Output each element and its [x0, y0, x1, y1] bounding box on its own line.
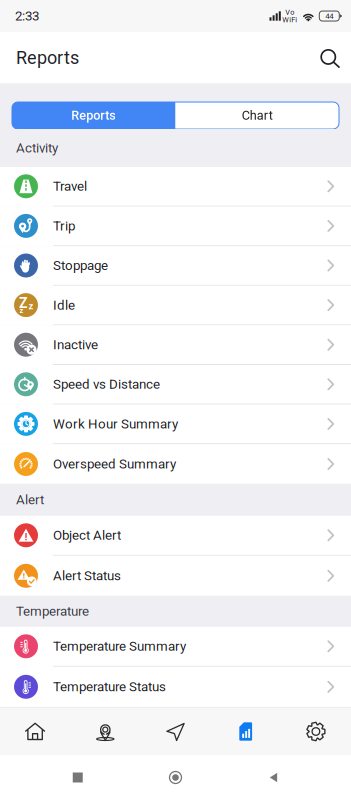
staticText: Trip: [53, 218, 75, 234]
staticText: Vo: [285, 8, 294, 16]
button[interactable]: Recents: [58, 755, 98, 800]
button[interactable]: Stoppage: [0, 246, 351, 286]
button[interactable]: Chart: [175, 102, 339, 129]
button[interactable]: Overspeed Summary: [0, 444, 351, 484]
staticText: Travel: [53, 178, 87, 194]
staticText: Alert Status: [53, 568, 121, 584]
staticText: Object Alert: [53, 527, 121, 543]
button[interactable]: Back: [253, 755, 293, 800]
button[interactable]: Work Hour Summary: [0, 405, 351, 444]
staticText: Alert: [16, 492, 44, 508]
staticText: Reports: [71, 108, 116, 123]
staticText: Z: [19, 295, 27, 311]
button[interactable]: Alert Status: [0, 556, 351, 596]
button[interactable]: Home: [155, 755, 195, 800]
staticText: Work Hour Summary: [53, 416, 178, 432]
button[interactable]: Settings: [281, 708, 351, 755]
staticText: Stoppage: [53, 258, 108, 273]
button[interactable]: Places: [70, 708, 140, 755]
button[interactable]: Z: [0, 286, 351, 325]
staticText: Chart: [242, 108, 273, 123]
staticText: Activity: [16, 140, 58, 156]
button[interactable]: Object Alert: [0, 516, 351, 556]
button[interactable]: Reports: [211, 708, 281, 755]
staticText: z: [19, 306, 23, 315]
staticText: Reports: [16, 47, 79, 68]
button[interactable]: Temperature Status: [0, 667, 351, 707]
staticText: Idle: [53, 297, 75, 313]
button[interactable]: Home: [0, 708, 70, 755]
button[interactable]: Reports: [12, 102, 175, 129]
staticText: Speed vs Distance: [53, 376, 160, 392]
staticText: z: [28, 301, 33, 311]
staticText: Temperature: [16, 603, 89, 619]
button[interactable]: Trip: [0, 207, 351, 246]
staticText: WiFi: [282, 15, 297, 24]
staticText: Temperature Summary: [53, 638, 186, 654]
button[interactable]: Search: [309, 37, 351, 79]
staticText: 44: [325, 11, 333, 21]
staticText: 2:33: [15, 8, 39, 24]
button[interactable]: Live Track: [140, 708, 211, 755]
staticText: Overspeed Summary: [53, 456, 176, 472]
button[interactable]: Inactive: [0, 325, 351, 365]
staticText: Temperature Status: [53, 679, 166, 695]
button[interactable]: Travel: [0, 167, 351, 207]
button[interactable]: Temperature Summary: [0, 627, 351, 667]
button[interactable]: Speed vs Distance: [0, 365, 351, 405]
staticText: Inactive: [53, 337, 98, 352]
